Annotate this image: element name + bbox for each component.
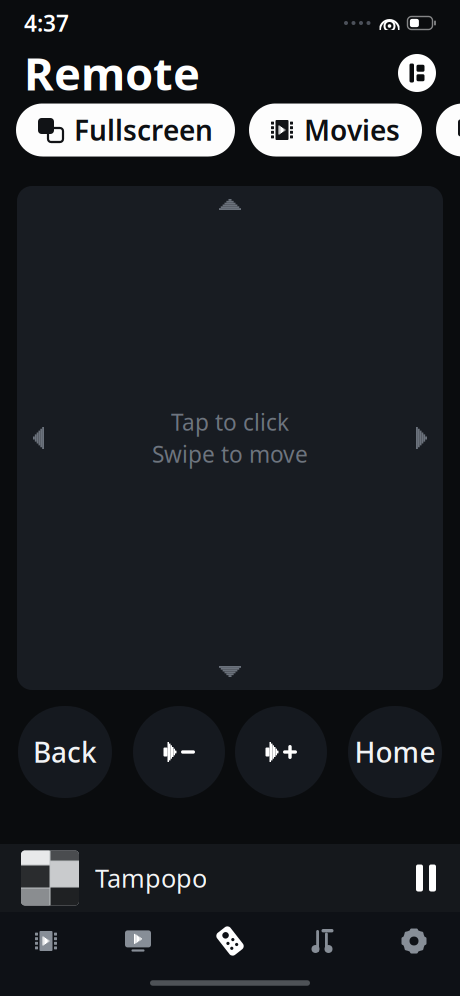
staticText: Swipe to move [152,439,308,469]
button[interactable]: Movies [0,912,92,970]
button[interactable]: Now playing Tampopo, pause [0,844,460,912]
staticText: Fullscreen [74,111,213,149]
button[interactable]: Back [18,706,112,798]
staticText: Remote [24,43,200,103]
staticText: Movies [304,111,400,149]
staticText: Back [33,733,97,771]
button[interactable]: Kodi host [398,54,436,92]
staticText: 4:37 [24,8,69,38]
button[interactable]: Movies [249,103,422,156]
button[interactable]: Volume up [235,706,327,798]
button[interactable]: Fullscreen [16,103,235,156]
staticText: Home [354,733,435,771]
button[interactable]: Music [276,912,368,970]
button[interactable]: Trackpad, tap to click, swipe to move [17,186,443,690]
button[interactable]: Volume down [133,706,225,798]
button[interactable]: TV Shows [92,912,184,970]
button[interactable]: Series [436,103,460,156]
staticText: Tampopo [95,861,207,895]
button[interactable]: Home [348,706,442,798]
staticText: Tap to click [171,407,289,437]
button[interactable]: Remote [184,912,276,970]
button[interactable]: Settings [368,912,460,970]
